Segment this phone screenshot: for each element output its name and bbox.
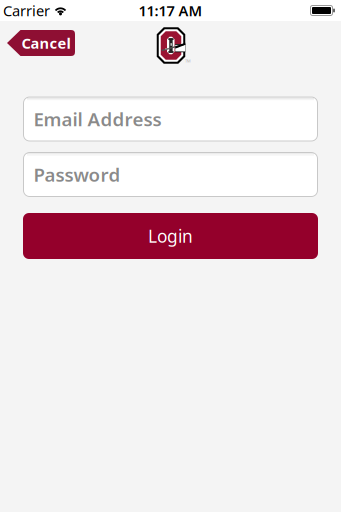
staticText: Cancel (21, 33, 70, 53)
staticText: Email Address (33, 107, 161, 131)
button[interactable]: Cancel (7, 30, 75, 56)
button[interactable]: Password (23, 152, 318, 197)
staticText: 11:17 AM (138, 1, 202, 20)
button[interactable]: Email Address (23, 96, 318, 141)
staticText: Login (148, 224, 193, 247)
staticText: Password (33, 162, 120, 187)
staticText: Carrier (3, 1, 50, 20)
button[interactable]: Login (23, 213, 318, 259)
staticText: TM (185, 58, 191, 64)
